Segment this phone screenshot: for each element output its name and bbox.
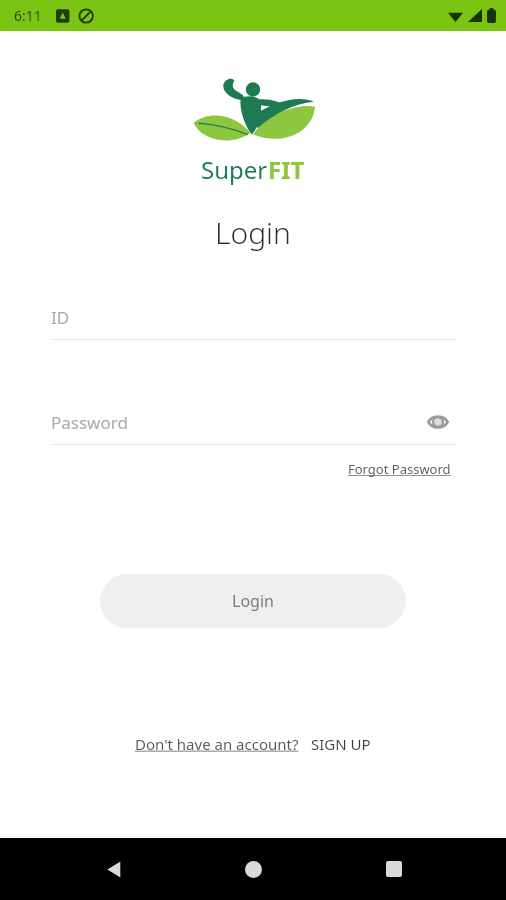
staticText: 6:11 [14,6,42,25]
staticText: ID [51,306,70,329]
staticText: SIGN UP [311,734,371,754]
button[interactable]: Password [51,400,455,444]
staticText: Login [215,212,291,253]
button[interactable]: Home [225,841,281,897]
button[interactable]: Back [85,841,141,897]
staticText: Forgot Password [348,460,451,478]
staticText: Login [232,590,274,612]
button[interactable]: Don't have an account? [133,732,301,756]
staticText: Password [51,411,421,434]
staticText: FIT [268,153,305,186]
button[interactable]: SIGN UP [309,732,373,756]
button[interactable]: Login [100,574,406,628]
button[interactable]: ID [51,295,455,340]
staticText: Super [201,153,268,186]
button[interactable]: Forgot Password [344,456,455,482]
staticText: Don't have an account? [135,734,299,754]
button[interactable]: Recent apps [366,841,422,897]
button[interactable]: Show password [421,405,455,439]
